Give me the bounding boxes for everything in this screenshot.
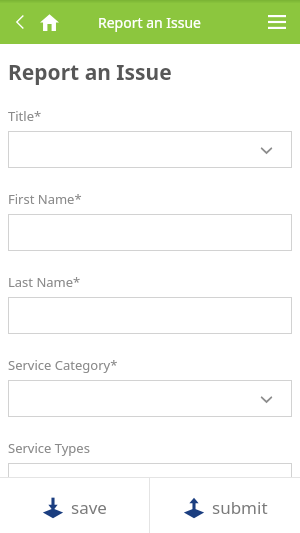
staticText: Service Category*	[8, 356, 118, 374]
staticText: Report an Issue	[8, 58, 172, 87]
staticText: Report an Issue	[98, 13, 202, 32]
button[interactable]	[8, 463, 292, 500]
button[interactable]	[8, 380, 292, 417]
staticText: First Name*	[8, 190, 82, 208]
button[interactable]	[8, 297, 292, 334]
button[interactable]: Back	[4, 6, 36, 38]
staticText: submit	[212, 496, 268, 519]
button[interactable]	[8, 131, 292, 168]
staticText: Title*	[8, 107, 42, 125]
button[interactable]	[8, 214, 292, 251]
button[interactable]: submit	[150, 478, 300, 533]
button[interactable]: Menu	[260, 5, 294, 39]
staticText: save	[71, 496, 107, 519]
button[interactable]: Home	[34, 7, 64, 37]
staticText: Service Types	[8, 439, 90, 457]
button[interactable]: save	[0, 478, 149, 533]
staticText: Last Name*	[8, 273, 81, 291]
